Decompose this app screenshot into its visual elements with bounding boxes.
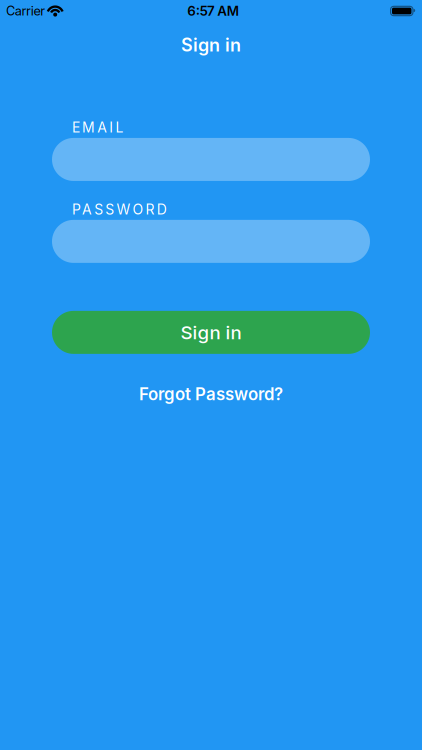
staticText: PASSWORD xyxy=(72,201,167,218)
staticText: Forgot Password? xyxy=(139,384,283,404)
staticText: Sign in xyxy=(180,321,241,344)
button[interactable]: Sign in xyxy=(52,311,370,354)
button[interactable]: Email xyxy=(52,138,370,181)
staticText: Carrier xyxy=(6,3,45,19)
staticText: EMAIL xyxy=(72,119,123,136)
button[interactable]: Forgot Password? xyxy=(52,384,370,404)
staticText: 6:57 AM xyxy=(187,3,239,19)
staticText: Sign in xyxy=(181,34,241,56)
button[interactable]: Password xyxy=(52,220,370,263)
